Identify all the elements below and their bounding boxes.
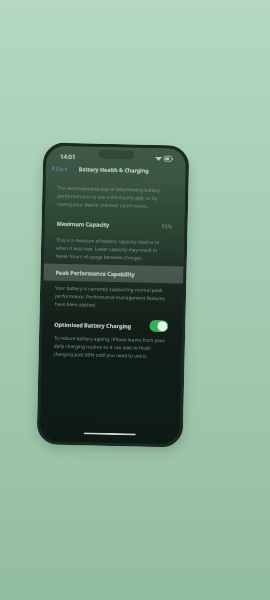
staticText: Peak Performance Capability — [55, 269, 135, 277]
staticText: To reduce battery ageing, iPhone learns … — [54, 335, 168, 360]
staticText: The recommended way of determining batte… — [57, 185, 171, 210]
staticText: Maximum Capacity — [56, 220, 110, 228]
button[interactable]: Optimised Battery Charging toggle — [149, 320, 168, 332]
staticText: Optimised Battery Charging — [54, 321, 131, 329]
staticText: 93% — [161, 222, 173, 229]
staticText: This is a measure of battery capacity re… — [56, 237, 170, 262]
staticText: Back — [56, 165, 68, 172]
staticText: 14:01 — [60, 153, 76, 161]
button[interactable]: Peak Performance Capability — [43, 263, 184, 284]
button[interactable]: Maximum Capacity — [44, 218, 185, 231]
staticText: Your battery is currently supporting nor… — [55, 285, 169, 310]
button[interactable]: Back — [50, 163, 70, 173]
staticText: Battery Health & Charging — [79, 165, 149, 174]
button[interactable]: Optimised Battery Charging — [42, 317, 182, 333]
